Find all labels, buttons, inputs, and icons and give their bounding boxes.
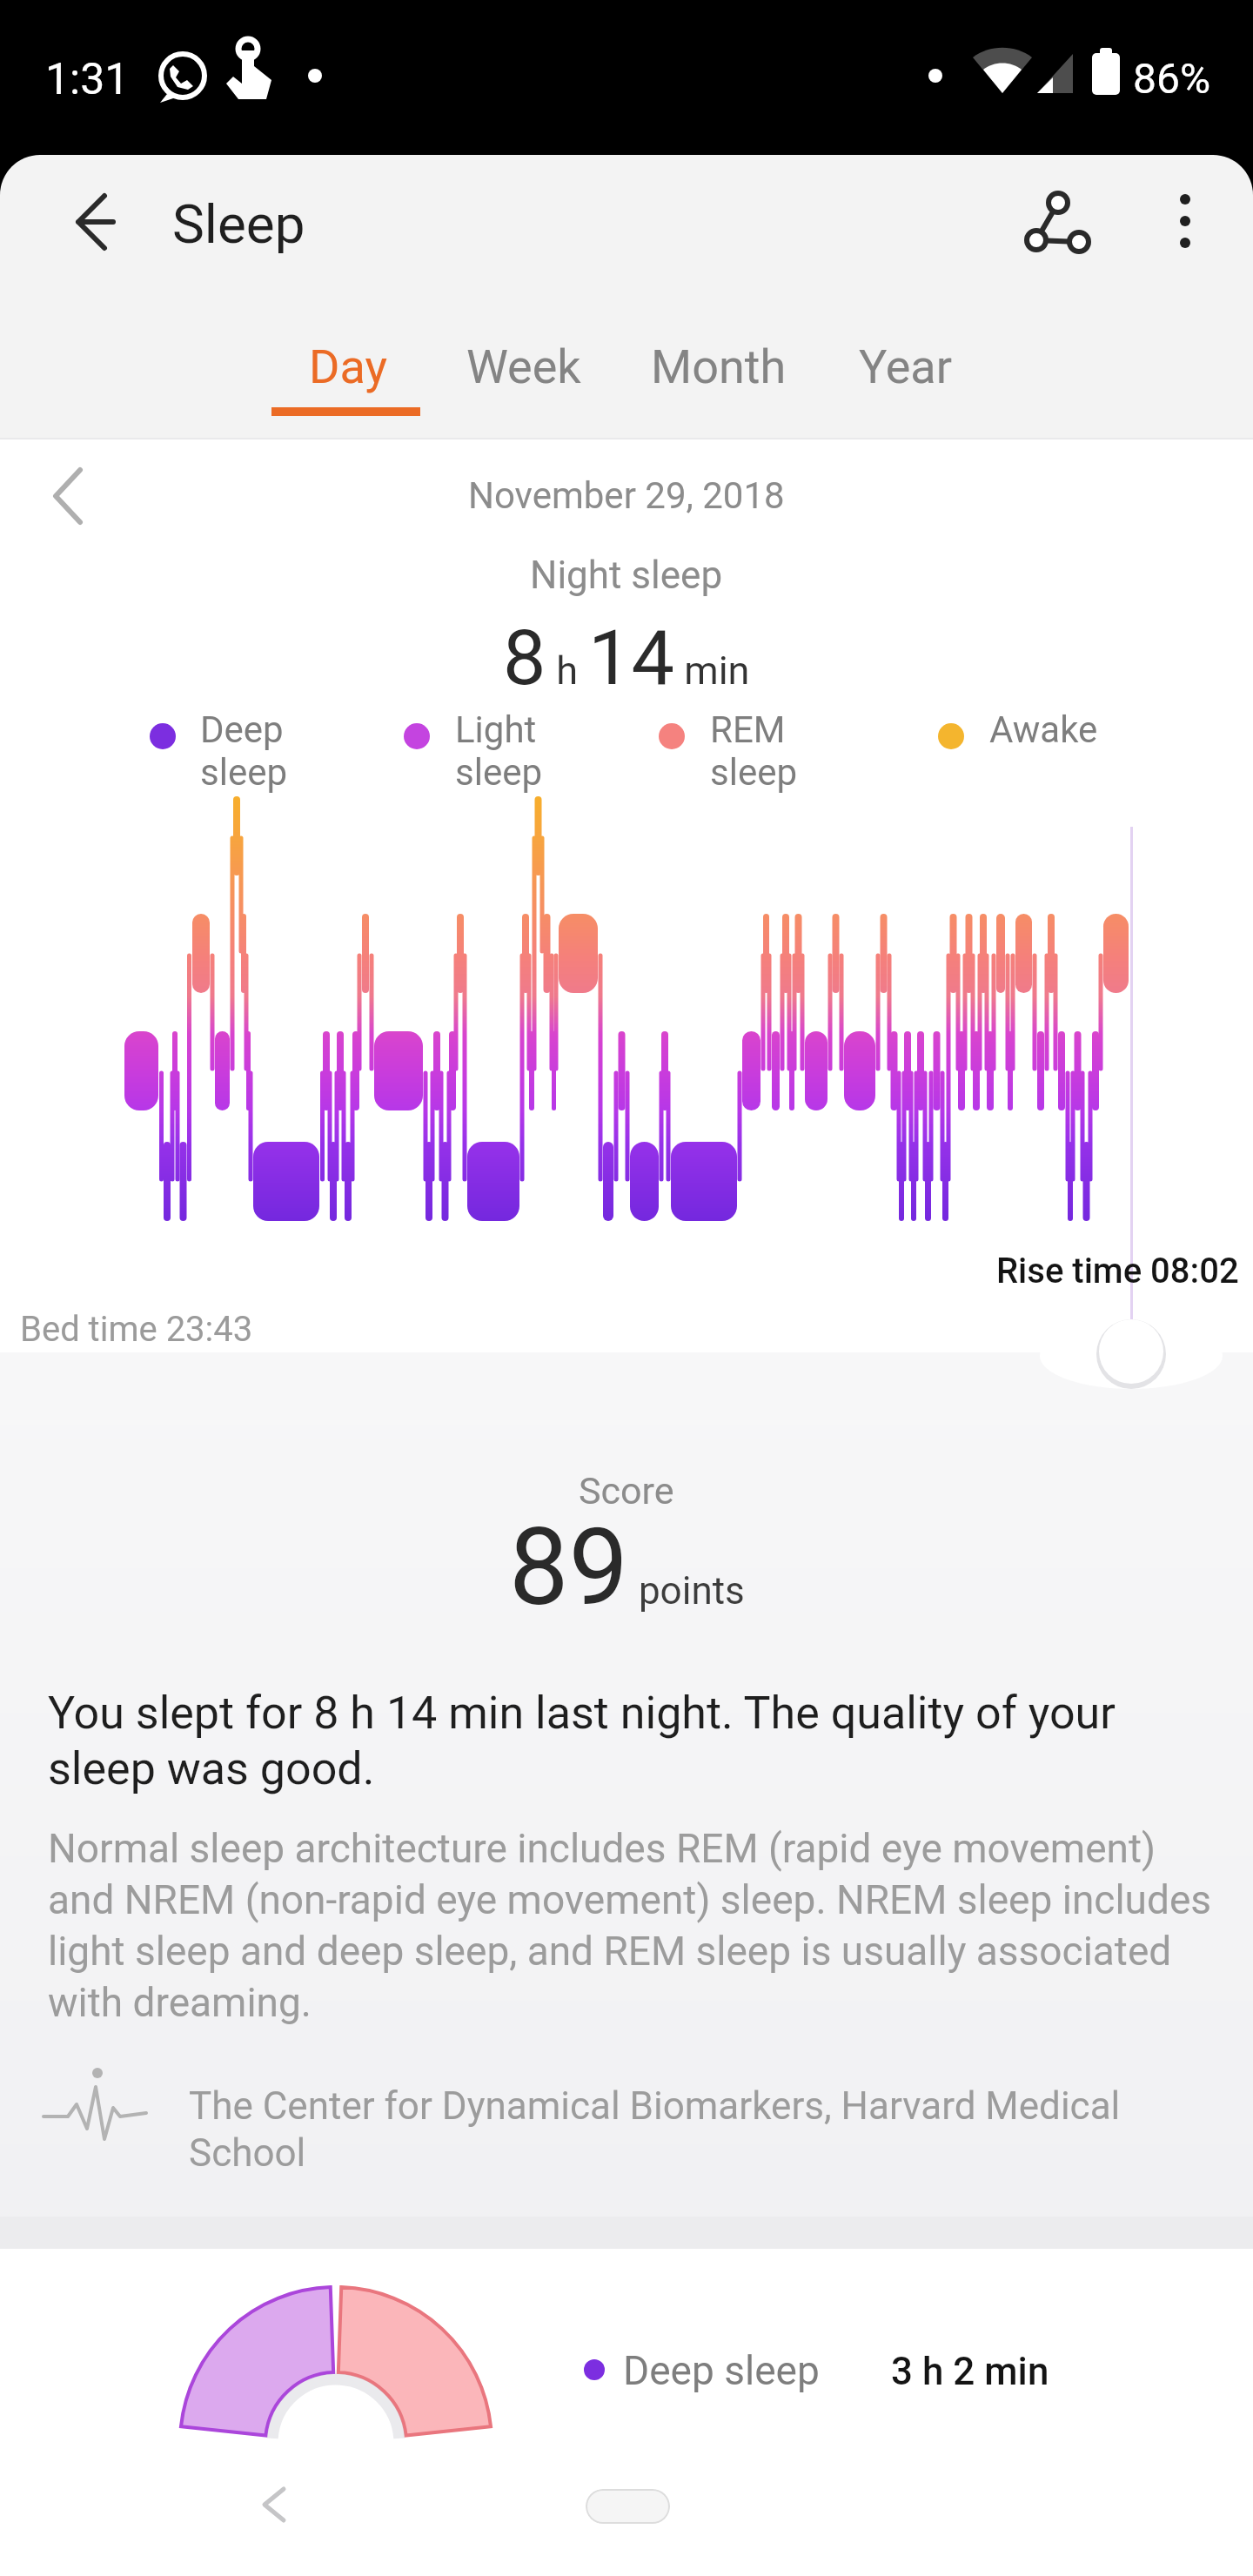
button[interactable]: Week <box>393 339 654 419</box>
staticText: School <box>189 2130 306 2176</box>
staticText: Day <box>309 339 387 394</box>
staticText: Light <box>455 708 537 751</box>
staticText: h <box>546 647 588 694</box>
staticText: Awake <box>989 708 1098 751</box>
staticText: 3 h 2 min <box>891 2349 1049 2394</box>
staticText: sleep <box>710 751 798 794</box>
staticText: 89 <box>509 1506 629 1630</box>
staticText: Bed time 23:43 <box>20 1309 253 1350</box>
staticText: 86% <box>1133 54 1211 103</box>
staticText: Rise time 08:02 <box>996 1251 1239 1291</box>
button[interactable] <box>586 2489 670 2524</box>
staticText: You slept for 8 h 14 min last night. The… <box>48 1687 1116 1740</box>
button[interactable] <box>44 178 131 265</box>
staticText: November 29, 2018 <box>468 474 785 517</box>
staticText: 8 <box>503 613 546 702</box>
button[interactable]: Day <box>218 339 479 419</box>
staticText: sleep <box>455 751 543 794</box>
staticText: 1:31 <box>45 54 130 105</box>
button[interactable]: Year <box>775 339 1036 419</box>
staticText: light sleep and deep sleep, and REM slee… <box>48 1928 1172 1975</box>
button[interactable] <box>1149 174 1222 270</box>
staticText: Deep <box>200 708 284 751</box>
staticText: Month <box>651 339 787 394</box>
staticText: sleep <box>200 751 288 794</box>
staticText: points <box>629 1568 745 1613</box>
staticText: and NREM (non-rapid eye movement) sleep.… <box>48 1876 1212 1923</box>
staticText: Score <box>579 1469 674 1513</box>
staticText: Sleep <box>172 192 305 256</box>
staticText: The Center for Dynamical Biomarkers, Har… <box>189 2083 1121 2129</box>
staticText: Deep sleep <box>623 2347 820 2394</box>
staticText: sleep was good. <box>48 1742 375 1795</box>
staticText: min <box>674 647 750 694</box>
staticText: REM <box>710 708 786 751</box>
staticText: Night sleep <box>530 553 723 598</box>
staticText: Week <box>466 339 581 394</box>
staticText: 14 <box>588 613 674 702</box>
button[interactable]: Month <box>588 339 849 419</box>
staticText: Normal sleep architecture includes REM (… <box>48 1825 1156 1872</box>
staticText: Year <box>859 339 953 394</box>
staticText: with dreaming. <box>48 1979 312 2026</box>
button[interactable] <box>1009 174 1105 270</box>
button[interactable] <box>35 461 104 531</box>
